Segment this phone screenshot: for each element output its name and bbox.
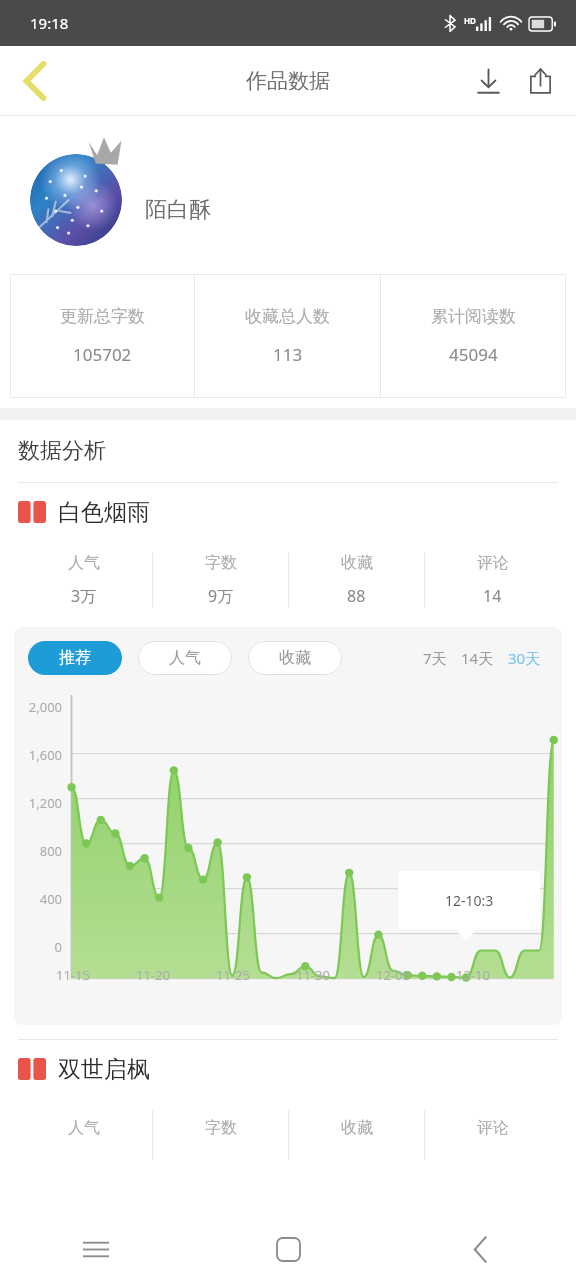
button[interactable]: Avatar <box>30 154 122 246</box>
staticText: 800 <box>14 842 62 860</box>
staticText: 1,600 <box>14 746 62 764</box>
staticText: 收藏 <box>279 648 311 668</box>
button[interactable]: 评论 <box>425 1098 560 1160</box>
button[interactable]: 收藏 <box>289 541 424 619</box>
button[interactable]: 人气 <box>138 641 232 675</box>
button[interactable]: 更新总字数 <box>10 274 194 398</box>
staticText: 11-15 <box>56 966 90 984</box>
staticText: 9万 <box>208 585 234 607</box>
staticText: 7天 <box>423 648 447 668</box>
staticText: 双世启枫 <box>58 1055 150 1084</box>
button[interactable]: 白色烟雨 <box>0 483 576 541</box>
staticText: 113 <box>273 343 303 366</box>
staticText: 3万 <box>71 585 97 607</box>
staticText: 字数 <box>205 553 237 573</box>
button[interactable]: Share <box>516 57 564 105</box>
staticText: 人气 <box>68 553 100 573</box>
staticText: 累计阅读数 <box>431 306 516 327</box>
staticText: 400 <box>14 890 62 908</box>
staticText: 人气 <box>169 648 201 668</box>
staticText: 评论 <box>477 553 509 573</box>
button[interactable]: Back <box>384 1218 576 1280</box>
button[interactable]: 累计阅读数 <box>381 274 566 398</box>
staticText: 30天 <box>508 648 541 668</box>
staticText: 14天 <box>461 648 494 668</box>
staticText: 人气 <box>68 1118 100 1138</box>
staticText: 收藏总人数 <box>245 306 330 327</box>
staticText: HD <box>464 15 476 26</box>
staticText: 11-30 <box>296 966 330 984</box>
staticText: 作品数据 <box>246 68 330 94</box>
button[interactable]: 14天 <box>458 643 497 673</box>
staticText: 评论 <box>477 1118 509 1138</box>
staticText: 12-10 <box>456 966 490 984</box>
button[interactable]: Home <box>192 1218 384 1280</box>
button[interactable]: 7天 <box>420 643 450 673</box>
staticText: 白色烟雨 <box>58 498 150 527</box>
staticText: 收藏 <box>341 1118 373 1138</box>
button[interactable]: 推荐 <box>28 641 122 675</box>
button[interactable]: 双世启枫 <box>0 1040 576 1098</box>
staticText: 数据分析 <box>18 437 106 465</box>
staticText: 更新总字数 <box>60 306 145 327</box>
staticText: 88 <box>347 585 366 607</box>
staticText: 12-05 <box>376 966 410 984</box>
button[interactable]: 人气 <box>16 1098 152 1160</box>
staticText: 陌白酥 <box>145 196 211 224</box>
staticText: 105702 <box>73 343 132 366</box>
staticText: 45094 <box>449 343 498 366</box>
button[interactable]: 字数 <box>153 541 288 619</box>
button[interactable]: Recent apps <box>0 1218 192 1280</box>
button[interactable]: 收藏 <box>289 1098 424 1160</box>
button[interactable]: 收藏 <box>248 641 342 675</box>
button[interactable]: 评论 <box>425 541 560 619</box>
staticText: 19:18 <box>30 13 69 33</box>
staticText: 2,000 <box>14 698 62 716</box>
staticText: 0 <box>14 938 62 956</box>
button[interactable]: Download <box>464 57 512 105</box>
button[interactable]: 30天 <box>505 643 544 673</box>
staticText: 12-10:3 <box>445 891 494 910</box>
staticText: 14 <box>483 585 502 607</box>
button[interactable]: 收藏总人数 <box>195 274 380 398</box>
staticText: 字数 <box>205 1118 237 1138</box>
button[interactable]: 字数 <box>153 1098 288 1160</box>
staticText: 推荐 <box>59 648 91 668</box>
button[interactable]: Back <box>6 52 64 110</box>
staticText: 1,200 <box>14 794 62 812</box>
staticText: 11-20 <box>136 966 170 984</box>
staticText: 11-25 <box>216 966 250 984</box>
staticText: 收藏 <box>341 553 373 573</box>
button[interactable]: 人气 <box>16 541 152 619</box>
